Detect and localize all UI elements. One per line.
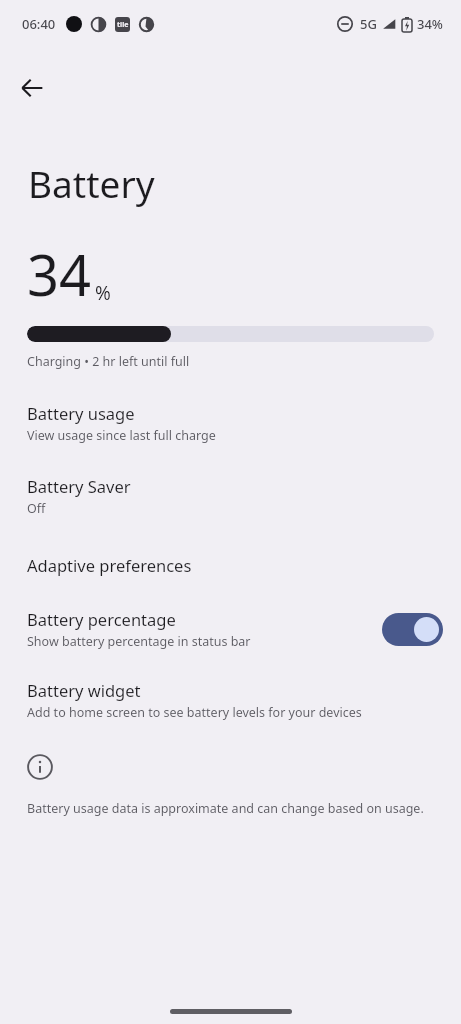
button[interactable]: Battery usage [0,400,461,446]
staticText: Off [27,500,46,517]
staticText: Battery [28,158,155,208]
button[interactable]: Back [10,66,54,110]
staticText: Battery usage [27,402,135,424]
staticText: Battery widget [27,679,141,701]
staticText: Charging • 2 hr left until full [27,353,190,370]
staticText: Battery Saver [27,475,131,497]
staticText: 5G [360,15,377,33]
button[interactable]: Battery Saver [0,473,461,519]
button[interactable]: Battery percentage [0,608,461,650]
staticText: % [95,280,111,306]
staticText: 06:40 [22,15,56,33]
button[interactable]: Battery percentage toggle [382,613,443,646]
button[interactable]: Battery widget [0,677,461,723]
staticText: View usage since last full charge [27,427,216,444]
staticText: Show battery percentage in status bar [27,633,251,650]
staticText: tile [117,20,129,30]
staticText: Add to home screen to see battery levels… [27,704,362,721]
button[interactable]: Adaptive preferences [0,552,461,578]
staticText: Battery usage data is approximate and ca… [27,800,424,817]
staticText: 34 [27,236,92,312]
staticText: Battery percentage [27,608,176,630]
staticText: 34% [417,15,443,33]
